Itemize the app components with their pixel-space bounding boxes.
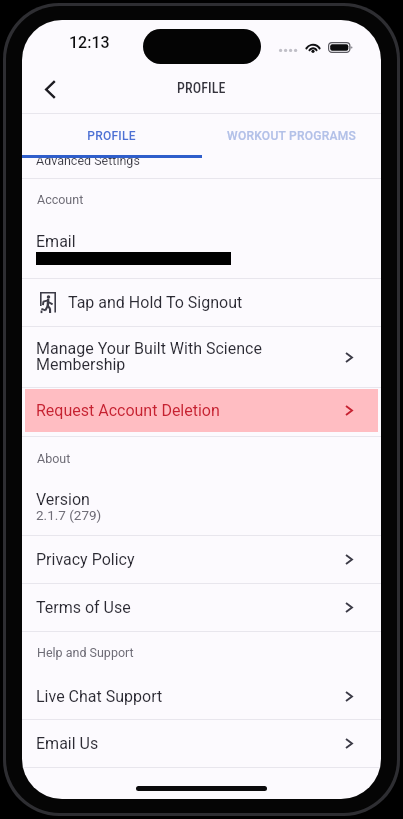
staticText: Help and Support — [37, 645, 134, 660]
button[interactable]: Back — [30, 69, 70, 109]
button[interactable]: Account — [22, 179, 381, 278]
staticText: Request Account Deletion — [36, 401, 345, 420]
staticText: Email Us — [36, 734, 345, 753]
button[interactable]: Request Account Deletion — [25, 389, 378, 432]
staticText: 12:13 — [69, 33, 110, 52]
button[interactable]: WORKOUT PROGRAMS — [201, 114, 381, 158]
staticText: Version — [36, 490, 90, 509]
staticText: Live Chat Support — [36, 687, 345, 706]
button[interactable]: Terms of Use — [22, 584, 381, 631]
button[interactable]: Privacy Policy — [22, 536, 381, 583]
staticText: Terms of Use — [36, 598, 345, 617]
button[interactable]: Manage Your Built With Science Membershi… — [22, 327, 381, 387]
staticText: 2.1.7 (279) — [36, 507, 102, 523]
staticText: PROFILE — [87, 129, 136, 143]
button[interactable]: Live Chat Support — [22, 673, 381, 719]
staticText: Email — [36, 232, 76, 251]
staticText: Tap and Hold To Signout — [68, 293, 243, 312]
button[interactable]: PROFILE — [22, 114, 201, 158]
button[interactable]: Tap and Hold To Signout — [22, 279, 381, 326]
staticText: About — [37, 451, 71, 466]
staticText: Account — [37, 192, 84, 207]
staticText: PROFILE — [177, 80, 226, 96]
button[interactable]: Email Us — [22, 720, 381, 767]
staticText: Privacy Policy — [36, 550, 345, 569]
staticText: Manage Your Built With Science Membershi… — [36, 339, 275, 374]
staticText: WORKOUT PROGRAMS — [227, 129, 356, 143]
staticText: Advanced Settings — [36, 158, 140, 168]
